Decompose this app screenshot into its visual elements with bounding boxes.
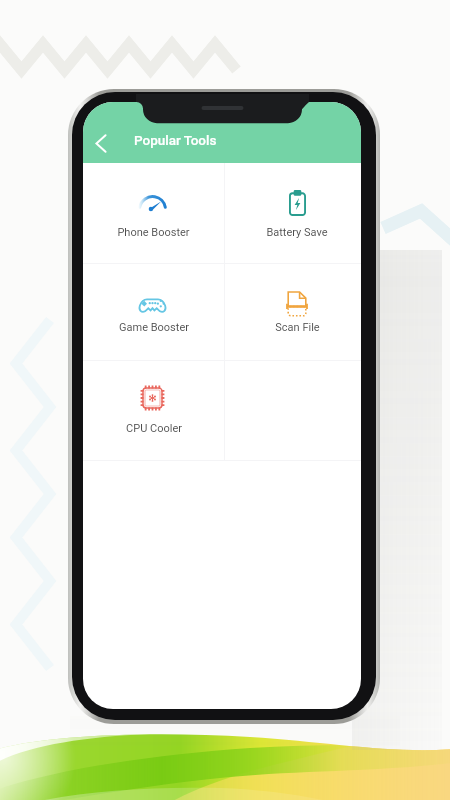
button[interactable]: Phone Booster bbox=[83, 163, 224, 263]
staticText: Game Booster bbox=[119, 321, 189, 334]
button[interactable]: Back bbox=[83, 124, 119, 162]
staticText: Phone Booster bbox=[117, 226, 190, 239]
staticText: Scan File bbox=[275, 321, 320, 334]
button[interactable]: Scan File bbox=[225, 264, 361, 360]
staticText: CPU Cooler bbox=[126, 422, 182, 435]
staticText: Popular Tools bbox=[134, 132, 217, 148]
button[interactable]: Game Booster bbox=[83, 264, 224, 360]
button[interactable]: CPU Cooler bbox=[83, 361, 224, 460]
button[interactable]: Battery Save bbox=[225, 163, 361, 263]
staticText: Battery Save bbox=[266, 226, 328, 239]
